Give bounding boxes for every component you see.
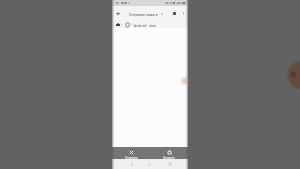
- button[interactable]: Home: [145, 159, 154, 169]
- button[interactable]: Grid view: [171, 10, 178, 17]
- button[interactable]: Вставить: [150, 147, 188, 159]
- button[interactable]: Home: [115, 21, 120, 28]
- button[interactable]: Recents: [165, 159, 174, 169]
- button[interactable]: data: [149, 21, 156, 28]
- staticText: Android: [134, 23, 147, 27]
- button[interactable]: Основная память: [129, 6, 163, 21]
- staticText: Вставить: [163, 156, 175, 159]
- button[interactable]: Отменить: [112, 147, 150, 159]
- staticText: Основная память: [129, 12, 158, 16]
- button[interactable]: Android: [134, 21, 147, 28]
- button[interactable]: Back: [127, 159, 136, 169]
- button[interactable]: Back: [115, 10, 122, 17]
- button[interactable]: More options: [180, 10, 187, 17]
- staticText: Отменить: [125, 156, 138, 159]
- button[interactable]: Internal storage: [125, 21, 129, 28]
- staticText: data: [149, 23, 156, 27]
